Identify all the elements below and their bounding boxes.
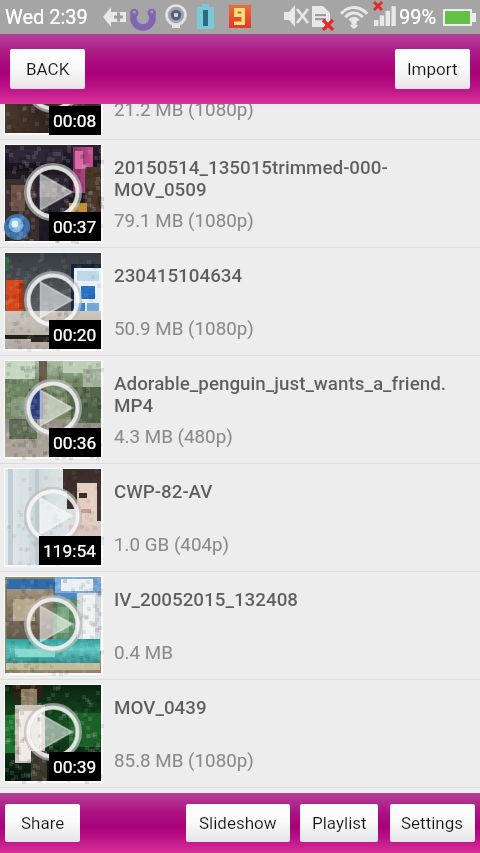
button[interactable]: Import: [395, 49, 470, 89]
button[interactable]: 00:39: [0, 680, 480, 787]
staticText: 00:08: [53, 111, 97, 131]
staticText: 00:20: [53, 325, 97, 345]
staticText: Settings: [401, 813, 464, 833]
staticText: CWP-82-AV: [114, 481, 454, 503]
button[interactable]: BACK: [10, 49, 85, 89]
button[interactable]: Settings: [390, 804, 475, 842]
button[interactable]: 119:54: [0, 464, 480, 571]
staticText: Import: [407, 59, 458, 79]
staticText: Share: [21, 813, 65, 833]
staticText: 99%: [399, 5, 437, 28]
staticText: 79.1 MB (1080p): [114, 210, 254, 232]
staticText: 85.8 MB (1080p): [114, 750, 254, 772]
button[interactable]: Slideshow: [186, 804, 290, 842]
button[interactable]: 00:37: [0, 140, 480, 247]
staticText: BACK: [26, 59, 70, 79]
staticText: MOV_0439: [114, 697, 454, 719]
staticText: 230415104634: [114, 265, 454, 287]
button[interactable]: Playlist: [300, 804, 378, 842]
staticText: 50.9 MB (1080p): [114, 318, 254, 340]
button[interactable]: Share: [5, 804, 80, 842]
staticText: 20150514_135015trimmed-000-MOV_0509: [114, 157, 454, 200]
staticText: 21.2 MB (1080p): [114, 104, 254, 121]
staticText: Playlist: [312, 813, 367, 833]
staticText: Adorable_penguin_just_wants_a_friend.MP4: [114, 373, 454, 416]
staticText: 00:36: [53, 433, 97, 453]
staticText: IV_20052015_132408: [114, 589, 454, 611]
staticText: 119:54: [43, 541, 97, 561]
button[interactable]: 00:20: [0, 248, 480, 355]
staticText: 1.0 GB (404p): [114, 534, 230, 556]
button[interactable]: 00:36: [0, 356, 480, 463]
staticText: Slideshow: [199, 813, 277, 833]
staticText: 0.4 MB: [114, 642, 173, 664]
staticText: Wed 2:39: [5, 5, 88, 28]
button[interactable]: IV_20052015_132408: [0, 572, 480, 679]
staticText: 00:37: [53, 217, 97, 237]
staticText: 4.3 MB (480p): [114, 426, 233, 448]
staticText: 00:39: [53, 757, 97, 777]
